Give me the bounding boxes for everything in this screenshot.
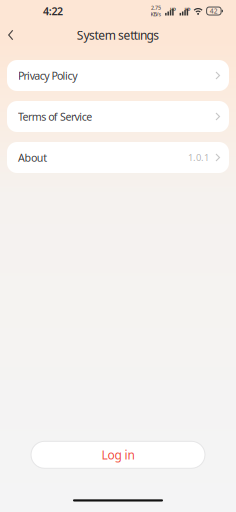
button[interactable]: Privacy Policy [7,60,229,91]
button[interactable]: Terms of Service [7,101,229,132]
staticText: 1.0.1 [188,151,209,164]
staticText: HD [170,6,176,12]
staticText: 42 [210,7,218,15]
staticText: HD [185,6,191,12]
button[interactable]: Back [0,23,13,47]
button[interactable]: Log in [31,441,205,468]
staticText: Log in [101,447,134,463]
staticText: Privacy Policy [18,68,77,83]
staticText: Terms of Service [18,109,92,124]
staticText: 4:22 [43,4,63,18]
staticText: 2.75 [151,4,161,11]
staticText: About [18,150,47,165]
staticText: System settings [77,27,159,43]
staticText: KB/s [151,11,162,18]
button[interactable]: About [7,142,229,173]
